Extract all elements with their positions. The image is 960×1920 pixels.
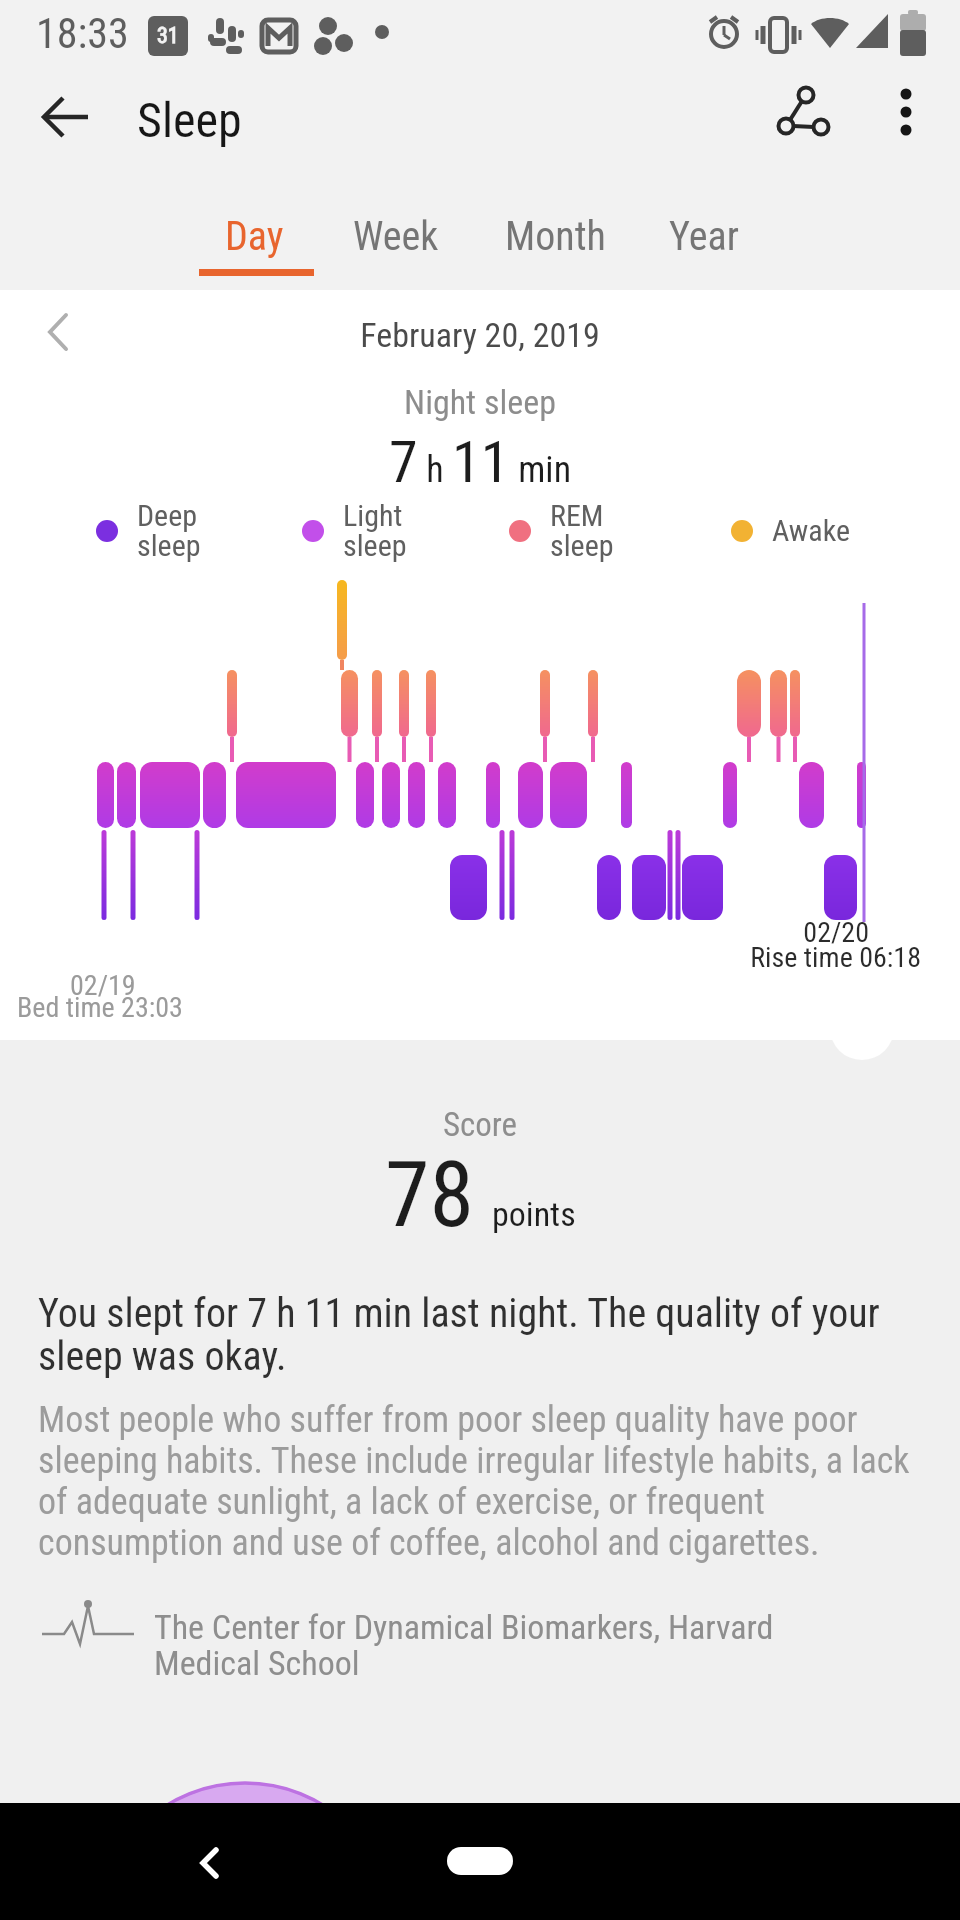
button[interactable]: Month <box>485 190 625 282</box>
staticText: You slept for 7 h 11 min last night. The… <box>38 1290 948 1380</box>
staticText: February 20, 2019 <box>0 315 960 355</box>
staticText: Month <box>505 213 606 260</box>
staticText: sleep <box>137 528 201 563</box>
staticText: 11 <box>452 428 510 496</box>
button[interactable] <box>874 80 938 144</box>
staticText: The Center for Dynamical Biomarkers, Har… <box>154 1607 914 1683</box>
button[interactable] <box>830 996 894 1060</box>
staticText: 02/19 <box>70 969 136 1002</box>
staticText: Deep <box>137 498 198 533</box>
staticText: Week <box>353 213 439 260</box>
staticText: sleep <box>550 528 614 563</box>
staticText: Sleep <box>137 92 242 148</box>
button[interactable] <box>447 1847 513 1875</box>
staticText: Score <box>0 1105 960 1144</box>
staticText: 78 <box>385 1143 474 1248</box>
button[interactable] <box>170 1823 250 1903</box>
staticText: Night sleep <box>0 382 960 422</box>
staticText: min <box>510 449 572 491</box>
staticText: REM <box>550 498 604 533</box>
staticText: Day <box>225 213 284 260</box>
button[interactable]: Year <box>634 190 774 282</box>
staticText: Bed time 23:03 <box>17 991 183 1024</box>
button[interactable]: Day <box>184 190 324 282</box>
staticText: 31 <box>157 23 179 49</box>
staticText: Rise time 06:18 <box>0 941 921 974</box>
button[interactable]: Week <box>326 190 466 282</box>
staticText: sleep <box>343 528 407 563</box>
staticText: 7 <box>389 428 418 496</box>
button[interactable] <box>30 305 86 361</box>
button[interactable] <box>30 81 102 153</box>
staticText: Year <box>669 213 739 260</box>
staticText: points <box>492 1194 576 1234</box>
staticText: h <box>418 449 452 491</box>
staticText: 02/20 <box>0 916 869 949</box>
staticText: 18:33 <box>36 9 129 58</box>
staticText: Most people who suffer from poor sleep q… <box>38 1399 948 1564</box>
button[interactable] <box>758 76 834 152</box>
staticText: Light <box>343 498 403 533</box>
staticText: Awake <box>772 513 850 548</box>
